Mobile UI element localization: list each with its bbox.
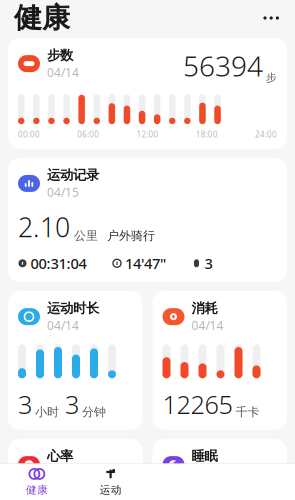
staticText: 运动时长 (47, 300, 99, 316)
staticText: 小时 (35, 405, 59, 419)
staticText: 18:00 (196, 129, 218, 140)
staticText: 12:00 (136, 129, 158, 140)
button[interactable]: 运动 (74, 462, 148, 500)
staticText: 步数 (47, 47, 73, 63)
staticText: 04/15 (47, 184, 79, 200)
staticText: 12265 (162, 387, 232, 421)
staticText: 睡眠 (191, 448, 217, 464)
staticText: 00:00 (18, 129, 40, 140)
staticText: 24:00 (255, 129, 277, 140)
staticText: 3 (204, 253, 212, 273)
staticText: 步 (266, 71, 277, 84)
staticText: 健康 (14, 1, 70, 35)
button[interactable]: 步数 (8, 38, 287, 149)
staticText: 00:31:04 (30, 253, 86, 273)
staticText: 千卡 (235, 405, 259, 419)
staticText: 04/14 (47, 64, 79, 80)
staticText: 14'47" (125, 253, 166, 273)
staticText: 户外骑行 (107, 228, 155, 243)
button[interactable]: 运动时长 (8, 291, 142, 430)
staticText: 公里 (74, 228, 98, 243)
button[interactable]: 睡眠 (152, 439, 287, 500)
staticText: 04/14 (47, 317, 79, 333)
button[interactable]: 健康 (0, 462, 74, 500)
staticText: 消耗 (191, 300, 217, 316)
staticText: 04/14 (191, 317, 223, 333)
staticText: 健康 (26, 483, 48, 496)
button[interactable]: 心率 (8, 439, 142, 500)
staticText: 运动 (100, 483, 122, 496)
staticText: 3 (65, 387, 79, 421)
staticText: 06:00 (77, 129, 99, 140)
staticText: 心率 (47, 448, 73, 464)
staticText: 运动记录 (47, 167, 99, 183)
staticText: 3 (18, 387, 32, 421)
button[interactable]: 消耗 (152, 291, 287, 430)
button[interactable]: 运动记录 (8, 158, 287, 282)
staticText: 2.10 (18, 209, 70, 244)
staticText: 56394 (183, 47, 263, 84)
button[interactable]: 更多 (255, 8, 287, 28)
staticText: 分钟 (82, 405, 106, 419)
